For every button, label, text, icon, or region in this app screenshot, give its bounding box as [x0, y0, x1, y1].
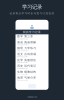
staticText: 数学 第三章	[17, 35, 33, 38]
staticText: 历史 近代笔记	[17, 64, 36, 68]
staticText: 学习记录	[22, 4, 42, 10]
staticText: 周一 17:15 · 20 分钟	[17, 73, 27, 75]
staticText: 今天 18:20 · 45 分钟	[17, 38, 27, 40]
staticText: 化学 实验报告	[17, 58, 36, 62]
staticText: 今天 16:05 · 30 分钟	[17, 44, 27, 46]
staticText: 昨天 19:40 · 25 分钟	[17, 56, 27, 57]
staticText: 记录每日学习时长与复习计划安排	[9, 12, 54, 15]
staticText: 周日 14:50 · 30 分钟	[17, 79, 27, 81]
staticText: 生物 细胞结构	[17, 70, 36, 73]
button[interactable]: 地理 气候分布	[17, 76, 47, 81]
staticText: 物理 力学练习	[17, 47, 36, 50]
staticText: 语文 古诗背诵	[17, 52, 36, 56]
staticText: 我的学习记录	[23, 30, 41, 34]
staticText: 上滑查看更多学习记录	[27, 96, 37, 98]
staticText: 昨天 15:30 · 40 分钟	[17, 62, 27, 63]
button[interactable]: 化学 实验报告	[17, 58, 47, 64]
staticText: 地理 气候分布	[17, 76, 36, 79]
button[interactable]: 英语 阅读理解	[17, 40, 47, 46]
button[interactable]: 语文 古诗背诵	[17, 52, 47, 58]
staticText: 昨天 21:10 · 50 分钟	[17, 50, 27, 52]
button[interactable]: 物理 力学练习	[17, 46, 47, 52]
staticText: 英语 阅读理解	[17, 41, 36, 44]
button[interactable]	[17, 82, 47, 90]
staticText: 周一 20:00 · 35 分钟	[17, 67, 27, 69]
button[interactable]: 生物 细胞结构	[17, 70, 47, 76]
button[interactable]: 数学 第三章	[17, 34, 47, 40]
button[interactable]: 历史 近代笔记	[17, 64, 47, 70]
